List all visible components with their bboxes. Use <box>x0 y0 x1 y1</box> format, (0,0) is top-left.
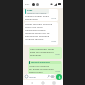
staticText: herkese gorev ver ve <box>25 31 50 34</box>
staticText: Anlastik tamam <box>25 37 44 40</box>
staticText: 10:31 <box>55 53 61 56</box>
staticText: Onun icin once <box>25 25 43 28</box>
staticText: 10:24 <box>51 40 57 43</box>
staticText: zamaninda tamamla <box>25 34 50 37</box>
staticText: Cevap vermeyi unutma <box>25 22 53 25</box>
staticText: Toplanti icin hazirlik <box>27 12 47 14</box>
staticText: 9:41 <box>25 3 30 6</box>
button[interactable]: Record voice message <box>56 74 62 80</box>
staticText: planlarim <box>30 53 42 56</box>
button[interactable]: Mesaj <box>24 74 55 79</box>
staticText: Kadir <box>27 9 33 12</box>
staticText: Toplanti sabah onda <box>25 14 49 17</box>
staticText: Bilgi icin tesekkurler <box>30 50 54 53</box>
staticText: bakar misin <box>29 70 43 73</box>
staticText: baslayacak <box>25 17 38 20</box>
staticText: Mesaj <box>29 75 36 78</box>
staticText: 10:44 <box>55 70 61 73</box>
button[interactable]: Cevap vermeyi unutma <box>24 22 58 45</box>
staticText: calismalari planla <box>25 28 46 31</box>
button[interactable]: Home <box>41 81 45 85</box>
staticText: Tabi tamamdir simdi <box>30 47 55 50</box>
staticText: Toplanti Planlama <box>31 61 50 64</box>
button[interactable]: Kadir <box>24 9 58 21</box>
button[interactable]: Tabi tamamdir simdi <box>29 47 62 59</box>
staticText: bir belge olusturdum <box>29 67 54 70</box>
staticText: 10:12 <box>51 17 57 20</box>
button[interactable]: Toplanti Planlama <box>28 61 62 74</box>
button[interactable]: Back <box>30 81 34 85</box>
button[interactable]: Recent apps <box>52 81 56 85</box>
staticText: Yarin icin ayrintili <box>29 64 49 67</box>
